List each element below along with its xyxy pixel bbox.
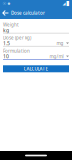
staticText: ● [7, 2, 10, 5]
staticText: 1.5 [3, 40, 10, 47]
staticText: ◢ [62, 1, 65, 6]
staticText: CALCULATE [23, 66, 48, 72]
staticText: 10 [3, 53, 9, 60]
staticText: ▊ [66, 1, 69, 6]
staticText: Weight [3, 22, 19, 28]
staticText: Dose calculator [11, 10, 45, 16]
staticText: mg/ml [49, 53, 63, 59]
staticText: Dose (per kg) [3, 35, 31, 41]
staticText: mg [56, 40, 63, 46]
staticText: Formulation [3, 48, 30, 54]
staticText: kg [3, 27, 9, 34]
staticText: ☉ [2, 1, 6, 6]
button[interactable]: CALCULATE [3, 65, 69, 72]
button[interactable]: Back [0, 7, 11, 19]
